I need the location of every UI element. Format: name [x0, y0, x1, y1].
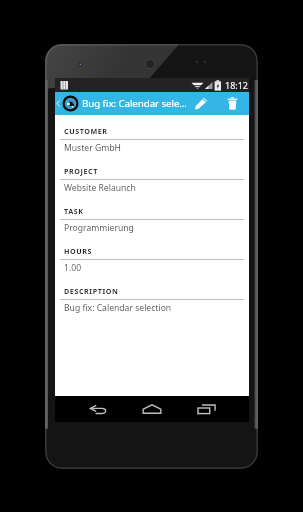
- button[interactable]: PROJECT: [55, 155, 249, 195]
- button[interactable]: TASK: [55, 195, 249, 235]
- staticText: DESCRIPTION: [64, 286, 119, 296]
- staticText: 18:12: [225, 79, 249, 91]
- staticText: HOURS: [64, 246, 93, 256]
- button[interactable]: Edit: [186, 92, 216, 115]
- button[interactable]: Delete: [216, 92, 249, 115]
- staticText: 1.00: [64, 262, 82, 274]
- button[interactable]: Navigate up: [55, 95, 186, 112]
- button[interactable]: Home: [129, 396, 175, 422]
- staticText: TASK: [64, 206, 84, 216]
- staticText: Programmierung: [64, 222, 134, 234]
- staticText: Bug fix: Calendar selection: [64, 302, 172, 314]
- staticText: Bug fix: Calendar sele…: [82, 97, 186, 110]
- button[interactable]: CUSTOMER: [55, 115, 249, 155]
- button[interactable]: Back: [75, 396, 121, 422]
- button[interactable]: Recent apps: [183, 396, 229, 422]
- staticText: PROJECT: [64, 166, 98, 176]
- staticText: CUSTOMER: [64, 126, 108, 136]
- staticText: Website Relaunch: [64, 182, 136, 194]
- button[interactable]: HOURS: [55, 235, 249, 275]
- button[interactable]: DESCRIPTION: [55, 275, 249, 315]
- staticText: Muster GmbH: [64, 142, 121, 154]
